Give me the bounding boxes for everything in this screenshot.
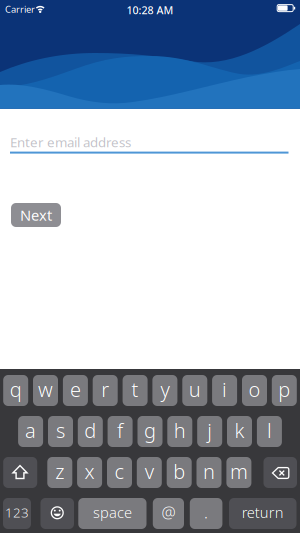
button[interactable] bbox=[3, 457, 37, 488]
button[interactable]: p bbox=[272, 375, 297, 406]
button[interactable]: space bbox=[78, 498, 146, 529]
staticText: n bbox=[203, 458, 215, 485]
staticText: o bbox=[248, 376, 260, 403]
staticText: 10:28 AM bbox=[126, 3, 173, 17]
staticText: q bbox=[10, 376, 22, 403]
button[interactable]: s bbox=[48, 416, 73, 447]
button[interactable]: 123 bbox=[3, 498, 31, 529]
staticText: d bbox=[84, 417, 96, 444]
staticText: @ bbox=[161, 502, 175, 523]
button[interactable]: Enter email address bbox=[10, 132, 288, 152]
button[interactable]: . bbox=[190, 498, 222, 529]
staticText: v bbox=[145, 458, 154, 485]
staticText: e bbox=[70, 376, 81, 403]
button[interactable]: u bbox=[182, 375, 207, 406]
staticText: x bbox=[85, 458, 95, 485]
staticText: k bbox=[234, 417, 244, 444]
staticText: i bbox=[222, 376, 227, 403]
button[interactable]: b bbox=[167, 457, 192, 488]
staticText: s bbox=[56, 417, 65, 444]
button[interactable]: c bbox=[107, 457, 132, 488]
button[interactable]: @ bbox=[153, 498, 184, 529]
button[interactable]: x bbox=[77, 457, 102, 488]
staticText: a bbox=[25, 417, 36, 444]
staticText: Next bbox=[20, 205, 52, 225]
staticText: Carrier bbox=[5, 3, 35, 15]
button[interactable]: w bbox=[33, 375, 58, 406]
staticText: t bbox=[132, 376, 139, 403]
button[interactable]: q bbox=[3, 375, 28, 406]
button[interactable] bbox=[40, 498, 74, 529]
staticText: space bbox=[93, 503, 132, 522]
staticText: u bbox=[189, 376, 201, 403]
button[interactable]: e bbox=[63, 375, 88, 406]
button[interactable]: l bbox=[257, 416, 282, 447]
staticText: c bbox=[114, 458, 124, 485]
button[interactable]: r bbox=[93, 375, 118, 406]
staticText: h bbox=[174, 417, 186, 444]
staticText: p bbox=[278, 376, 290, 403]
staticText: . bbox=[204, 502, 208, 523]
button[interactable]: n bbox=[196, 457, 221, 488]
button[interactable]: d bbox=[78, 416, 103, 447]
button[interactable]: y bbox=[152, 375, 177, 406]
staticText: m bbox=[230, 458, 248, 485]
staticText: l bbox=[267, 417, 272, 444]
staticText: 123 bbox=[5, 503, 29, 521]
button[interactable]: k bbox=[227, 416, 252, 447]
button[interactable]: v bbox=[137, 457, 162, 488]
staticText: f bbox=[117, 417, 123, 444]
staticText: j bbox=[207, 417, 212, 444]
button[interactable]: return bbox=[229, 498, 296, 529]
staticText: b bbox=[173, 458, 185, 485]
staticText: g bbox=[144, 417, 156, 444]
button[interactable]: i bbox=[212, 375, 237, 406]
staticText: y bbox=[160, 376, 169, 403]
button[interactable]: j bbox=[197, 416, 222, 447]
staticText: w bbox=[38, 376, 53, 403]
button[interactable]: o bbox=[242, 375, 267, 406]
staticText: return bbox=[242, 503, 284, 522]
button[interactable]: f bbox=[108, 416, 133, 447]
button[interactable]: Next bbox=[11, 203, 61, 227]
staticText: Enter email address bbox=[10, 133, 131, 151]
staticText: r bbox=[101, 376, 109, 403]
button[interactable]: g bbox=[137, 416, 162, 447]
staticText: z bbox=[55, 458, 64, 485]
button[interactable] bbox=[263, 457, 297, 488]
button[interactable]: t bbox=[123, 375, 148, 406]
button[interactable]: m bbox=[226, 457, 251, 488]
button[interactable]: a bbox=[18, 416, 43, 447]
button[interactable]: z bbox=[47, 457, 72, 488]
button[interactable]: h bbox=[167, 416, 192, 447]
